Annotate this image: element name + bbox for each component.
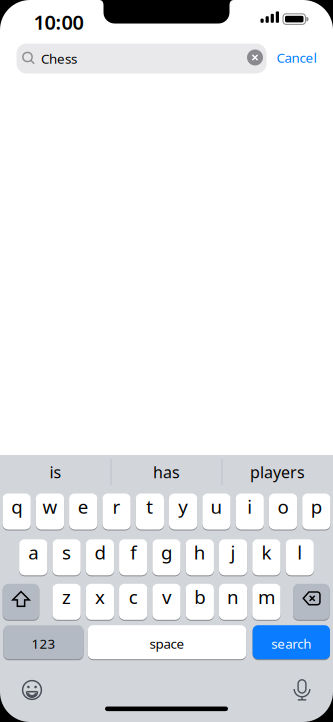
button[interactable]: d — [86, 539, 114, 575]
button[interactable]: k — [252, 539, 280, 575]
staticText: 10:00 — [33, 9, 83, 35]
staticText: p — [311, 494, 322, 519]
staticText: f — [130, 540, 136, 565]
button[interactable]: q — [2, 493, 31, 529]
button[interactable]: c — [119, 584, 147, 620]
button[interactable]: space — [88, 625, 246, 659]
staticText: e — [78, 494, 89, 519]
staticText: q — [11, 494, 22, 519]
staticText: h — [194, 540, 206, 565]
staticText: v — [162, 584, 171, 609]
button[interactable]: f — [119, 539, 147, 575]
staticText: s — [62, 540, 71, 565]
button[interactable]: u — [202, 493, 231, 529]
staticText: d — [94, 540, 105, 565]
button[interactable]: h — [186, 539, 214, 575]
button[interactable]: b — [186, 584, 214, 620]
staticText: is — [49, 461, 61, 483]
staticText: players — [250, 461, 305, 483]
staticText: j — [231, 540, 236, 565]
button[interactable]: is — [3, 455, 107, 489]
staticText: space — [149, 635, 184, 652]
button[interactable]: Clear text — [247, 49, 263, 65]
button[interactable]: Search — [16, 43, 266, 73]
staticText: y — [178, 494, 188, 519]
button[interactable]: n — [219, 584, 247, 620]
staticText: t — [146, 494, 153, 519]
staticText: n — [227, 584, 239, 609]
button[interactable]: i — [236, 493, 264, 529]
staticText: b — [194, 584, 205, 609]
button[interactable]: Dictate — [290, 679, 313, 701]
staticText: r — [112, 494, 120, 519]
button[interactable]: Shift — [3, 584, 39, 620]
staticText: o — [277, 494, 288, 519]
staticText: has — [153, 461, 180, 483]
button[interactable]: x — [86, 584, 114, 620]
button[interactable]: y — [169, 493, 197, 529]
button[interactable]: p — [302, 493, 330, 529]
staticText: search — [271, 635, 311, 652]
button[interactable]: v — [152, 584, 181, 620]
staticText: c — [129, 584, 138, 609]
staticText: k — [261, 540, 271, 565]
staticText: m — [258, 584, 275, 609]
staticText: Cancel — [276, 49, 316, 66]
button[interactable]: e — [69, 493, 97, 529]
button[interactable]: r — [102, 493, 131, 529]
button[interactable]: players — [225, 455, 329, 489]
staticText: Chess — [41, 50, 77, 67]
button[interactable]: search — [253, 625, 330, 659]
staticText: x — [95, 584, 105, 609]
staticText: a — [28, 540, 38, 565]
button[interactable]: has — [114, 455, 218, 489]
button[interactable]: w — [36, 493, 64, 529]
button[interactable]: j — [219, 539, 247, 575]
staticText: z — [62, 584, 71, 609]
button[interactable]: m — [252, 584, 280, 620]
staticText: w — [42, 494, 57, 519]
staticText: l — [297, 540, 302, 565]
button[interactable]: 123 — [3, 625, 83, 659]
button[interactable]: t — [136, 493, 164, 529]
button[interactable]: Cancel — [276, 49, 316, 66]
button[interactable]: z — [52, 584, 81, 620]
staticText: i — [247, 494, 252, 519]
button[interactable]: s — [52, 539, 81, 575]
staticText: g — [161, 540, 172, 565]
button[interactable]: o — [269, 493, 297, 529]
button[interactable]: Emoji — [21, 679, 43, 701]
button[interactable]: a — [19, 539, 47, 575]
staticText: u — [210, 494, 222, 519]
button[interactable]: Delete — [293, 584, 330, 620]
staticText: 123 — [31, 635, 55, 652]
button[interactable]: l — [286, 539, 314, 575]
button[interactable]: g — [152, 539, 181, 575]
